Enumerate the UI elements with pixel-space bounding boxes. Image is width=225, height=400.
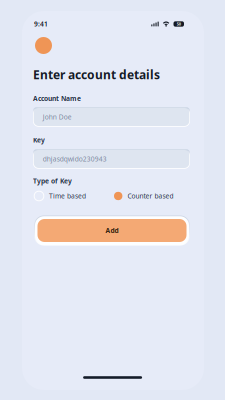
staticText: 9:41	[34, 20, 48, 28]
staticText: John Doe	[43, 113, 72, 121]
button[interactable]: Time based	[34, 190, 86, 201]
staticText: Add	[105, 226, 118, 235]
staticText: Type of Key	[33, 177, 72, 185]
button[interactable]: Back	[35, 37, 52, 54]
staticText: Enter account details	[33, 66, 160, 82]
staticText: Key	[33, 136, 45, 144]
staticText: 50	[177, 21, 181, 27]
button[interactable]: Counter based	[114, 190, 174, 201]
staticText: Counter based	[128, 192, 174, 200]
staticText: Time based	[49, 192, 86, 200]
staticText: dhjasdqwido230943	[43, 155, 107, 163]
staticText: Account Name	[33, 94, 81, 103]
button[interactable]: John Doe	[33, 107, 190, 127]
button[interactable]: Add	[34, 215, 190, 245]
button[interactable]: dhjasdqwido230943	[33, 149, 190, 169]
